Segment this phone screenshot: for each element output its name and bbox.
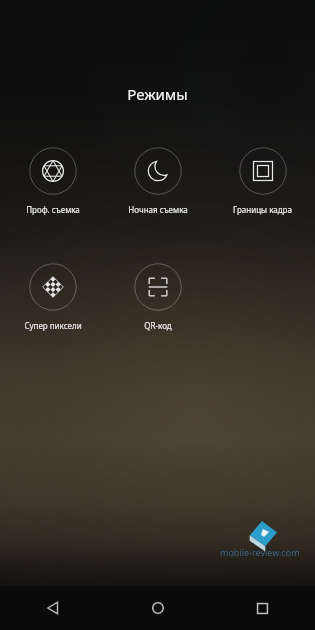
staticText: Ночная съемка: [128, 204, 188, 215]
button[interactable]: QR-код: [105, 261, 210, 333]
button[interactable]: Ночная съемка: [105, 145, 210, 217]
button[interactable]: Back: [0, 586, 105, 630]
staticText: Проф. съемка: [26, 204, 80, 215]
button[interactable]: Границы кадра: [210, 145, 315, 217]
button[interactable]: Recents: [210, 586, 315, 630]
staticText: Режимы: [127, 84, 188, 104]
staticText: Супер пиксели: [24, 320, 82, 331]
staticText: mobile-review.com: [220, 546, 300, 558]
staticText: QR-код: [144, 320, 172, 331]
button[interactable]: Home: [105, 586, 210, 630]
staticText: Границы кадра: [233, 204, 292, 215]
button[interactable]: Супер пиксели: [0, 261, 105, 333]
button[interactable]: Проф. съемка: [0, 145, 105, 217]
